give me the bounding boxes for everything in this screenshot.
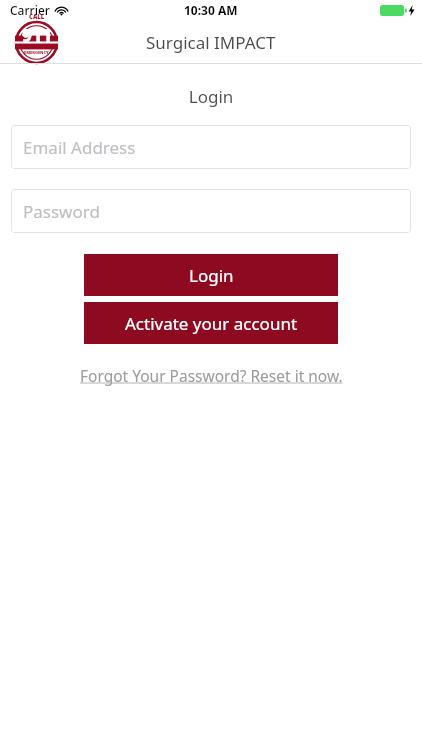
staticText: EMERGENCY (24, 50, 49, 55)
staticText: 10:30 AM (184, 2, 238, 18)
staticText: 911 (22, 24, 52, 47)
button[interactable]: Forgot Your Password? Reset it now. (70, 363, 353, 388)
button[interactable]: Login (84, 254, 338, 296)
button[interactable]: Call 911 Emergency (14, 20, 58, 64)
button[interactable]: Activate your account (84, 302, 338, 344)
staticText: Surgical IMPACT (146, 31, 276, 54)
button[interactable]: Email Address (11, 125, 411, 169)
staticText: Email Address (23, 136, 136, 159)
staticText: Login (0, 85, 422, 108)
staticText: Carrier (10, 2, 50, 18)
button[interactable]: Password (11, 189, 411, 233)
staticText: Password (23, 200, 100, 223)
staticText: CALL (29, 13, 45, 21)
staticText: Login (189, 264, 234, 287)
staticText: Activate your account (125, 312, 298, 335)
